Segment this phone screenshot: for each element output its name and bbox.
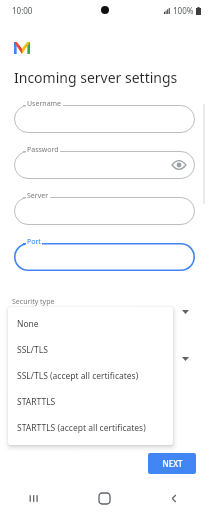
staticText: STARTTLS (accept all certificates): [17, 422, 146, 434]
button[interactable]: Home: [69, 484, 139, 512]
button[interactable]: None: [8, 311, 173, 337]
staticText: STARTTLS: [17, 396, 56, 408]
button[interactable]: NEXT: [148, 453, 196, 474]
button[interactable]: Open dropdown: [178, 305, 192, 319]
button[interactable]: STARTTLS (accept all certificates): [8, 415, 173, 441]
staticText: 100%: [173, 5, 194, 16]
staticText: Security type: [12, 297, 55, 307]
staticText: 10:00: [12, 5, 33, 16]
button[interactable]: Recent apps: [0, 484, 69, 512]
staticText: Username: [27, 99, 62, 109]
button[interactable]: SSL/TLS (accept all certificates): [8, 363, 173, 389]
staticText: Password: [27, 145, 59, 155]
staticText: Incoming server settings: [14, 68, 178, 87]
button[interactable]: [14, 197, 195, 225]
staticText: Server: [27, 191, 49, 201]
staticText: NEXT: [162, 458, 183, 469]
button[interactable]: STARTTLS: [8, 389, 173, 415]
staticText: Port: [27, 237, 41, 247]
button[interactable]: [14, 105, 195, 133]
button[interactable]: Back: [139, 484, 209, 512]
button[interactable]: Show password: [14, 151, 195, 179]
staticText: None: [17, 318, 39, 330]
button[interactable]: SSL/TLS: [8, 337, 173, 363]
staticText: SSL/TLS (accept all certificates): [17, 370, 139, 382]
staticText: SSL/TLS: [17, 344, 48, 356]
button[interactable]: Show password: [171, 157, 187, 173]
button[interactable]: [14, 243, 195, 271]
button[interactable]: Open dropdown: [178, 352, 192, 366]
